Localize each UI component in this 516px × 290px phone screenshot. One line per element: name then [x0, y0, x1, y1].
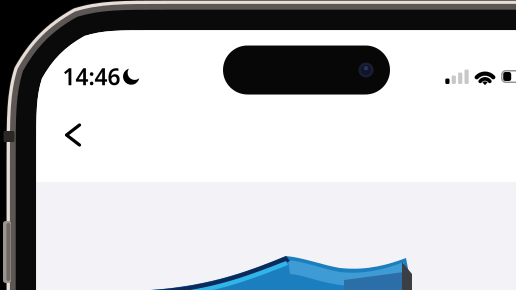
- button[interactable]: Back: [50, 112, 96, 158]
- staticText: 14:46: [62, 61, 120, 92]
